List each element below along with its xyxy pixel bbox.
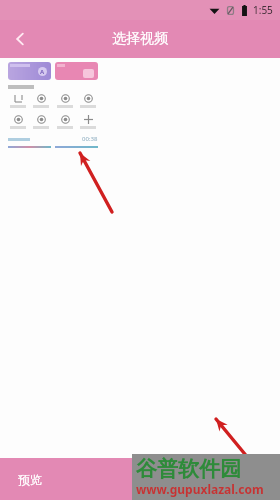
button[interactable]: Tool 5 bbox=[8, 115, 28, 129]
button[interactable]: Tool 2 bbox=[31, 94, 51, 108]
button[interactable]: A bbox=[8, 62, 51, 80]
button[interactable]: Tool 6 bbox=[31, 115, 51, 129]
staticText: www.gupuxlazal.com bbox=[136, 481, 264, 497]
button[interactable]: Tool 3 bbox=[55, 94, 75, 108]
staticText: 00:38 bbox=[82, 135, 98, 143]
button[interactable]: Back bbox=[0, 20, 40, 58]
staticText: 谷普软件园 bbox=[136, 456, 241, 482]
button[interactable]: Tool 4 bbox=[78, 94, 98, 108]
button[interactable] bbox=[55, 62, 98, 80]
staticText: 预览 bbox=[18, 472, 42, 487]
button[interactable]: Tool 7 bbox=[55, 115, 75, 129]
button[interactable]: Tool 1 bbox=[8, 94, 28, 108]
staticText: A bbox=[40, 68, 45, 76]
button[interactable]: 预览 bbox=[0, 458, 280, 500]
button[interactable]: Tool 8 bbox=[78, 115, 98, 129]
staticText: 1:55 bbox=[253, 3, 273, 17]
staticText: 选择视频 bbox=[112, 30, 168, 48]
